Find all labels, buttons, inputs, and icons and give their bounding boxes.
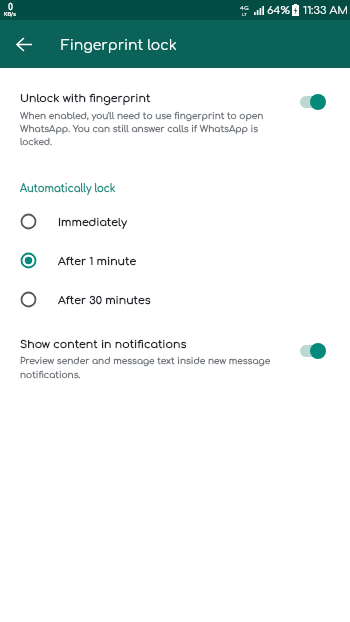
staticText: Immediately [58, 216, 128, 228]
staticText: Automatically lock [20, 183, 116, 194]
button[interactable]: Unlock with fingerprint [0, 78, 350, 156]
button[interactable]: Back [4, 24, 44, 64]
staticText: Fingerprint lock [61, 38, 177, 54]
staticText: 4G [240, 5, 249, 12]
staticText: 64% [267, 4, 290, 16]
button[interactable]: Toggle setting [300, 340, 334, 362]
button[interactable]: After 30 minutes [0, 280, 350, 319]
staticText: When enabled, you'll need to use fingerp… [20, 111, 270, 148]
staticText: Preview sender and message text inside n… [20, 356, 276, 380]
button[interactable]: Show content in notifications [0, 327, 350, 391]
button[interactable]: After 1 minute [0, 241, 350, 280]
staticText: 11:33 AM [303, 4, 349, 16]
button[interactable]: Immediately [0, 202, 350, 241]
staticText: 0 [8, 3, 13, 12]
button[interactable]: Toggle setting [300, 91, 334, 113]
staticText: KB/s [4, 12, 16, 18]
staticText: After 30 minutes [58, 294, 151, 306]
staticText: Show content in notifications [20, 338, 187, 350]
staticText: After 1 minute [58, 255, 137, 267]
staticText: Unlock with fingerprint [20, 92, 151, 104]
staticText: LT [242, 12, 247, 16]
